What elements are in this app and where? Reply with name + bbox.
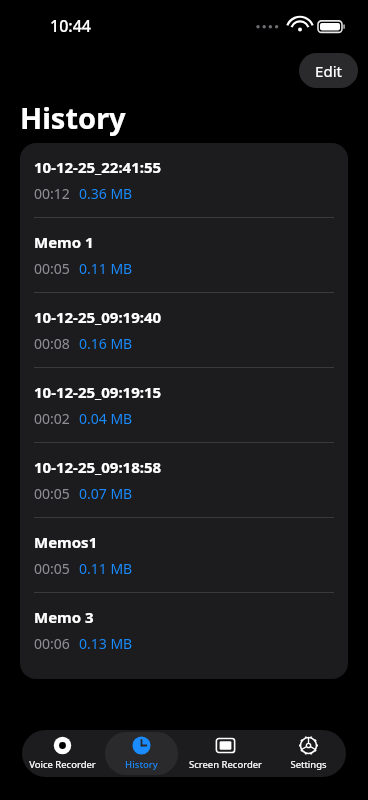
staticText: 00:05 [34,559,70,578]
button[interactable]: Memo 1 [20,218,348,292]
staticText: History [20,98,126,137]
staticText: 10-12-25_09:19:15 [34,382,162,402]
staticText: 00:05 [34,484,70,503]
button[interactable]: Settings [273,732,344,775]
button[interactable]: 10-12-25_09:19:40 [20,293,348,367]
button[interactable]: Memo 3 [20,593,348,667]
button[interactable]: History [105,732,178,775]
staticText: Screen Recorder [189,758,262,771]
staticText: 00:12 [34,184,70,203]
staticText: 10-12-25_22:41:55 [34,157,162,177]
other: Screen Recorder [216,736,235,755]
staticText: 10:44 [50,15,91,37]
other: Settings [299,736,318,755]
staticText: 00:06 [34,634,70,653]
button[interactable]: 10-12-25_09:19:15 [20,368,348,442]
button[interactable]: Voice Recorder [24,732,101,775]
staticText: Voice Recorder [29,758,96,771]
staticText: Edit [315,61,342,81]
button[interactable]: 10-12-25_22:41:55 [20,143,348,217]
staticText: 00:02 [34,409,70,428]
staticText: 0.16 MB [79,334,133,353]
staticText: 0.13 MB [79,634,133,653]
button[interactable]: Memos1 [20,518,348,592]
staticText: Memos1 [34,532,98,552]
staticText: 0.11 MB [79,259,133,278]
staticText: 10-12-25_09:19:40 [34,307,162,327]
staticText: 0.36 MB [79,184,133,203]
staticText: 0.07 MB [79,484,133,503]
staticText: 00:05 [34,259,70,278]
staticText: Memo 1 [34,232,94,252]
button[interactable]: Screen Recorder [182,732,269,775]
staticText: 10-12-25_09:18:58 [34,457,162,477]
staticText: Settings [290,758,327,771]
button[interactable]: Edit [299,53,358,88]
button[interactable]: 10-12-25_09:18:58 [20,443,348,517]
staticText: Memo 3 [34,607,94,627]
staticText: 0.04 MB [79,409,133,428]
other: Voice Recorder [53,736,72,755]
staticText: History [125,758,158,771]
staticText: 0.11 MB [79,559,133,578]
staticText: 00:08 [34,334,70,353]
other: History [132,736,151,755]
